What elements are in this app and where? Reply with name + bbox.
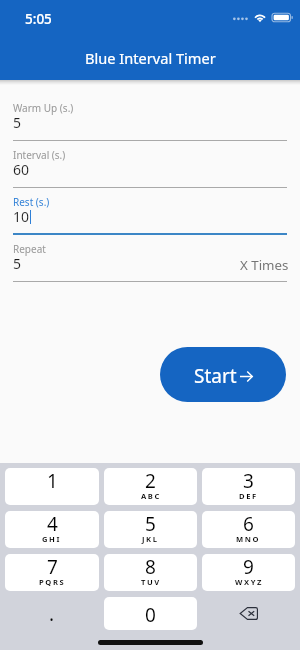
staticText: WXYZ bbox=[235, 577, 263, 587]
button[interactable]: 8 bbox=[104, 554, 197, 591]
staticText: Warm Up (s.) bbox=[13, 101, 74, 115]
staticText: 10 bbox=[13, 207, 30, 226]
button[interactable]: 7 bbox=[5, 554, 99, 591]
staticText: MNO bbox=[236, 534, 261, 544]
staticText: Interval (s.) bbox=[13, 148, 66, 162]
staticText: Blue Interval Timer bbox=[85, 48, 216, 68]
button[interactable]: 5 bbox=[104, 511, 197, 548]
staticText: PQRS bbox=[39, 577, 66, 587]
staticText: 5:05 bbox=[25, 10, 52, 28]
button[interactable]: . bbox=[5, 597, 99, 630]
staticText: 0 bbox=[145, 602, 156, 628]
button[interactable]: 4 bbox=[5, 511, 99, 548]
staticText: GHI bbox=[42, 534, 62, 544]
staticText: 60 bbox=[13, 160, 30, 179]
staticText: TUV bbox=[141, 577, 161, 587]
staticText: DEF bbox=[239, 491, 258, 501]
button[interactable]: 6 bbox=[202, 511, 295, 548]
staticText: 3 bbox=[243, 468, 254, 494]
button[interactable]: Delete bbox=[202, 597, 295, 630]
staticText: Start bbox=[194, 363, 237, 389]
staticText: 9 bbox=[243, 554, 254, 580]
button[interactable]: 2 bbox=[104, 468, 197, 505]
button[interactable]: 0 bbox=[104, 597, 197, 630]
button[interactable]: 9 bbox=[202, 554, 295, 591]
staticText: 8 bbox=[145, 554, 156, 580]
button[interactable]: Start bbox=[160, 347, 286, 402]
staticText: 6 bbox=[243, 511, 254, 537]
staticText: Rest (s.) bbox=[13, 195, 50, 209]
button[interactable]: 3 bbox=[202, 468, 295, 505]
staticText: 4 bbox=[47, 511, 58, 537]
staticText: 5 bbox=[13, 254, 22, 273]
staticText: JKL bbox=[142, 534, 159, 544]
staticText: 5 bbox=[13, 113, 22, 132]
staticText: 5 bbox=[145, 511, 156, 537]
staticText: 1 bbox=[47, 468, 58, 494]
staticText: 7 bbox=[47, 554, 58, 580]
staticText: . bbox=[49, 601, 55, 627]
button[interactable]: 1 bbox=[5, 468, 99, 505]
staticText: 2 bbox=[145, 468, 156, 494]
staticText: Repeat bbox=[13, 242, 46, 256]
staticText: X Times bbox=[240, 256, 289, 274]
staticText: ABC bbox=[141, 491, 161, 501]
